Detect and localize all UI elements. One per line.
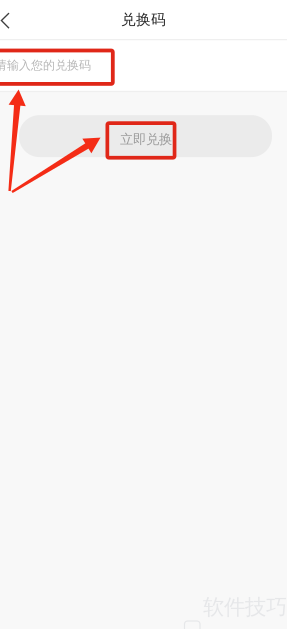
- staticText: 软件技巧: [203, 594, 287, 620]
- staticText: 兑换码: [121, 10, 166, 28]
- staticText: 请输入您的兑换码: [0, 58, 91, 72]
- button[interactable]: 请输入您的兑换码: [0, 40, 287, 91]
- staticText: 立即兑换: [120, 131, 172, 147]
- button[interactable]: Back: [0, 0, 287, 629]
- button[interactable]: 立即兑换: [19, 115, 272, 157]
